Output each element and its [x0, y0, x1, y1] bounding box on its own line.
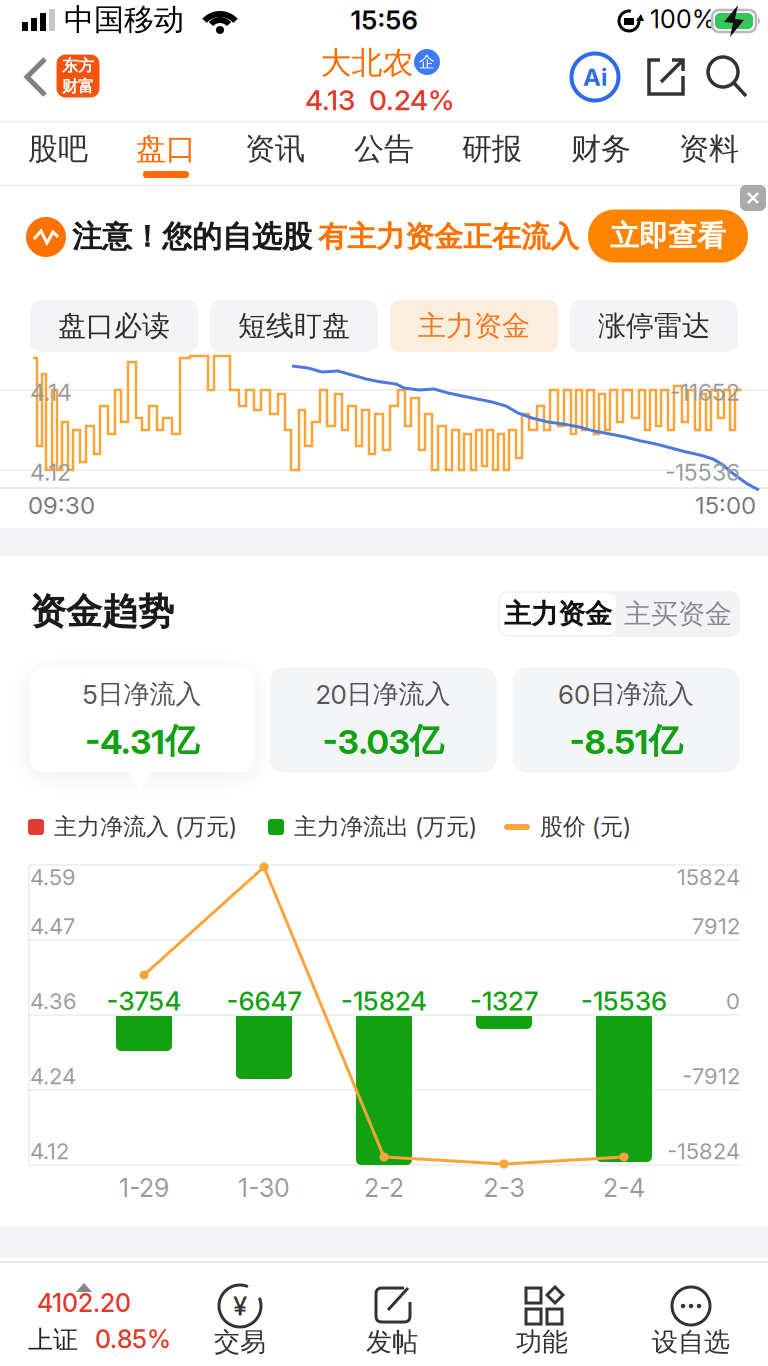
staticText: 15824	[677, 864, 740, 890]
staticText: 财富	[62, 76, 94, 96]
staticText: 4.13 0.24%	[305, 83, 455, 116]
staticText: 2-3	[483, 1173, 524, 1203]
button[interactable]: Ai 问答	[571, 53, 618, 100]
staticText: 有主力资金正在流入	[318, 219, 579, 255]
staticText: 短线盯盘	[238, 309, 350, 343]
staticText: 研报	[462, 131, 522, 167]
staticText: 立即查看	[610, 218, 726, 254]
staticText: 东方	[62, 56, 94, 75]
staticText: 0.85%	[95, 1324, 171, 1354]
button[interactable]: 股吧	[8, 121, 108, 177]
staticText: 4.36	[30, 988, 77, 1014]
staticText: -11652	[670, 379, 740, 406]
staticText: -15824	[341, 986, 427, 1016]
staticText: 20日净流入	[315, 678, 450, 710]
staticText: ¥	[233, 1291, 247, 1321]
staticText: -15536	[581, 986, 667, 1016]
button[interactable]: 公告	[334, 121, 434, 177]
staticText: 大北农	[320, 44, 413, 82]
staticText: -6647	[226, 986, 301, 1016]
button[interactable]: 立即查看	[588, 209, 748, 262]
staticText: 企	[419, 52, 435, 72]
button[interactable]: 注意！您的自选股	[0, 186, 768, 283]
button[interactable]: 盘口必读	[30, 300, 198, 352]
staticText: 2-4	[603, 1173, 645, 1203]
button[interactable]: 短线盯盘	[210, 300, 378, 352]
staticText: 功能	[516, 1326, 568, 1358]
staticText: -3.03亿	[322, 720, 443, 762]
staticText: 100%	[650, 4, 716, 34]
staticText: 发帖	[366, 1326, 418, 1358]
staticText: -15824	[667, 1138, 740, 1164]
staticText: 上证	[28, 1324, 78, 1355]
button[interactable]: 5日净流入	[29, 667, 254, 772]
staticText: 设自选	[652, 1326, 730, 1358]
button[interactable]: 主力资金	[500, 593, 616, 635]
button[interactable]: 关闭	[740, 185, 766, 211]
staticText: Ai	[583, 63, 607, 91]
button[interactable]: 东方财富	[56, 54, 99, 97]
staticText: -4.31亿	[85, 720, 199, 762]
button[interactable]: 主买资金	[618, 591, 738, 637]
button[interactable]: 盘口	[116, 121, 216, 177]
staticText: 主买资金	[624, 597, 732, 631]
staticText: -15536	[665, 459, 740, 486]
staticText: 2-2	[364, 1173, 404, 1203]
staticText: 涨停雷达	[598, 309, 710, 343]
staticText: 资料	[679, 131, 739, 167]
button[interactable]: 返回	[23, 56, 49, 98]
staticText: 交易	[214, 1326, 266, 1358]
staticText: 4.12	[30, 459, 71, 486]
staticText: -7912	[682, 1063, 740, 1089]
staticText: 0	[726, 988, 740, 1014]
staticText: 15:00	[695, 491, 756, 519]
staticText: 09:30	[28, 491, 95, 519]
staticText: 1-30	[238, 1173, 290, 1203]
staticText: 5日净流入	[82, 678, 201, 710]
staticText: -1327	[470, 986, 538, 1016]
button[interactable]: 资料	[659, 121, 759, 177]
button[interactable]: ¥	[170, 1262, 310, 1366]
staticText: 资金趋势	[30, 590, 174, 634]
staticText: 4.12	[30, 1138, 69, 1164]
button[interactable]: 研报	[442, 121, 542, 177]
staticText: 中国移动	[64, 1, 184, 38]
button[interactable]: 分享	[646, 57, 686, 97]
staticText: 4.14	[30, 379, 72, 406]
staticText: 主力净流出 (万元)	[294, 813, 477, 841]
staticText: 股价 (元)	[540, 813, 631, 841]
staticText: 7912	[692, 913, 740, 939]
staticText: 60日净流入	[558, 678, 694, 710]
button[interactable]: 主力资金	[390, 300, 558, 352]
staticText: 1-29	[119, 1173, 169, 1203]
button[interactable]: 20日净流入	[269, 667, 496, 772]
button[interactable]: 60日净流入	[512, 667, 739, 772]
staticText: -8.51亿	[569, 720, 682, 762]
staticText: 公告	[354, 131, 414, 167]
button[interactable]: 资讯	[225, 121, 325, 177]
staticText: -3754	[106, 986, 181, 1016]
button[interactable]: 4102.20	[14, 1262, 154, 1366]
staticText: 15:56	[350, 5, 417, 35]
staticText: 盘口	[136, 131, 196, 167]
button[interactable]: 搜索	[705, 56, 749, 100]
staticText: 4102.20	[37, 1288, 131, 1318]
staticText: 4.24	[30, 1063, 76, 1089]
staticText: 主力净流入 (万元)	[54, 813, 237, 841]
staticText: 财务	[571, 131, 631, 167]
staticText: 股吧	[28, 131, 88, 167]
staticText: 注意！您的自选股	[72, 218, 312, 255]
staticText: 主力资金	[504, 597, 612, 631]
staticText: 4.59	[30, 864, 76, 890]
button[interactable]: 设自选	[621, 1262, 761, 1366]
button[interactable]: 发帖	[322, 1262, 462, 1366]
button[interactable]: 财务	[551, 121, 651, 177]
staticText: 主力资金	[418, 309, 530, 343]
button[interactable]: 涨停雷达	[570, 300, 738, 352]
staticText: 4.47	[30, 913, 75, 939]
staticText: 资讯	[245, 131, 305, 167]
staticText: 盘口必读	[58, 309, 170, 343]
button[interactable]: 功能	[472, 1262, 612, 1366]
